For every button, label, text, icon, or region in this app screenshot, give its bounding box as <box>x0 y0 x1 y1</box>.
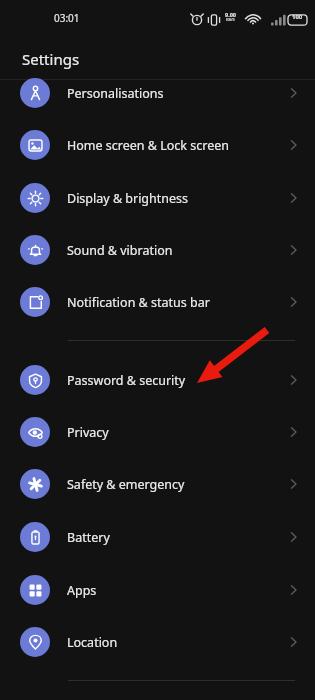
staticText: Display & brightness <box>67 190 189 207</box>
button[interactable]: Password & security <box>0 354 315 406</box>
other: Notification & status bar <box>287 294 303 310</box>
other: Battery <box>287 529 303 545</box>
other: Display & brightness <box>287 190 303 206</box>
other: Safety & emergency <box>287 476 303 492</box>
staticText: Notification & status bar <box>67 294 210 311</box>
staticText: Safety & emergency <box>67 476 185 493</box>
button[interactable]: Display & brightness <box>0 172 315 224</box>
staticText: Settings <box>22 49 80 69</box>
other: Password & security <box>287 372 303 388</box>
other: Home screen & Lock screen <box>287 137 303 153</box>
button[interactable]: Home screen & Lock screen <box>0 119 315 171</box>
staticText: Sound & vibration <box>67 242 173 259</box>
other: Personalisations <box>287 85 303 101</box>
staticText: KB/S <box>226 17 235 22</box>
staticText: 100 <box>292 13 303 21</box>
other: Location <box>287 634 303 650</box>
staticText: 03:01 <box>54 11 80 25</box>
other: Apps <box>287 582 303 598</box>
button[interactable]: Apps <box>0 564 315 616</box>
button[interactable]: Battery <box>0 511 315 563</box>
button[interactable]: Notification & status bar <box>0 276 315 328</box>
staticText: Privacy <box>67 424 109 441</box>
staticText: Personalisations <box>67 85 164 102</box>
other: Sound & vibration <box>287 242 303 258</box>
button[interactable]: Safety & emergency <box>0 458 315 510</box>
button[interactable]: Privacy <box>0 406 315 458</box>
button[interactable]: Sound & vibration <box>0 224 315 276</box>
staticText: Apps <box>67 582 97 599</box>
other: Privacy <box>287 424 303 440</box>
staticText: Home screen & Lock screen <box>67 137 229 154</box>
staticText: Battery <box>67 529 110 546</box>
staticText: Password & security <box>67 372 186 389</box>
staticText: Location <box>67 634 118 651</box>
staticText: 9.00 <box>225 11 236 18</box>
button[interactable]: Location <box>0 616 315 668</box>
button[interactable]: Personalisations <box>0 67 315 119</box>
